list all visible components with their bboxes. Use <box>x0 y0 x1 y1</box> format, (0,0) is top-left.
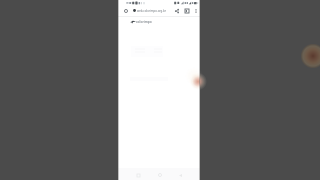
button[interactable]: Home <box>156 171 164 179</box>
button[interactable]: web.colorimpo.org.br <box>133 7 173 14</box>
staticText: web.colorimpo.org.br <box>137 9 166 13</box>
button[interactable]: Recent apps <box>134 171 142 179</box>
button[interactable]: colorimpo <box>130 19 152 24</box>
button[interactable]: Reload <box>122 7 129 14</box>
button[interactable]: Share <box>173 7 180 14</box>
button[interactable]: More options <box>192 7 199 14</box>
button[interactable]: Tabs <box>183 7 190 14</box>
staticText: colorimpo <box>136 20 152 24</box>
button[interactable]: Back <box>176 171 184 179</box>
